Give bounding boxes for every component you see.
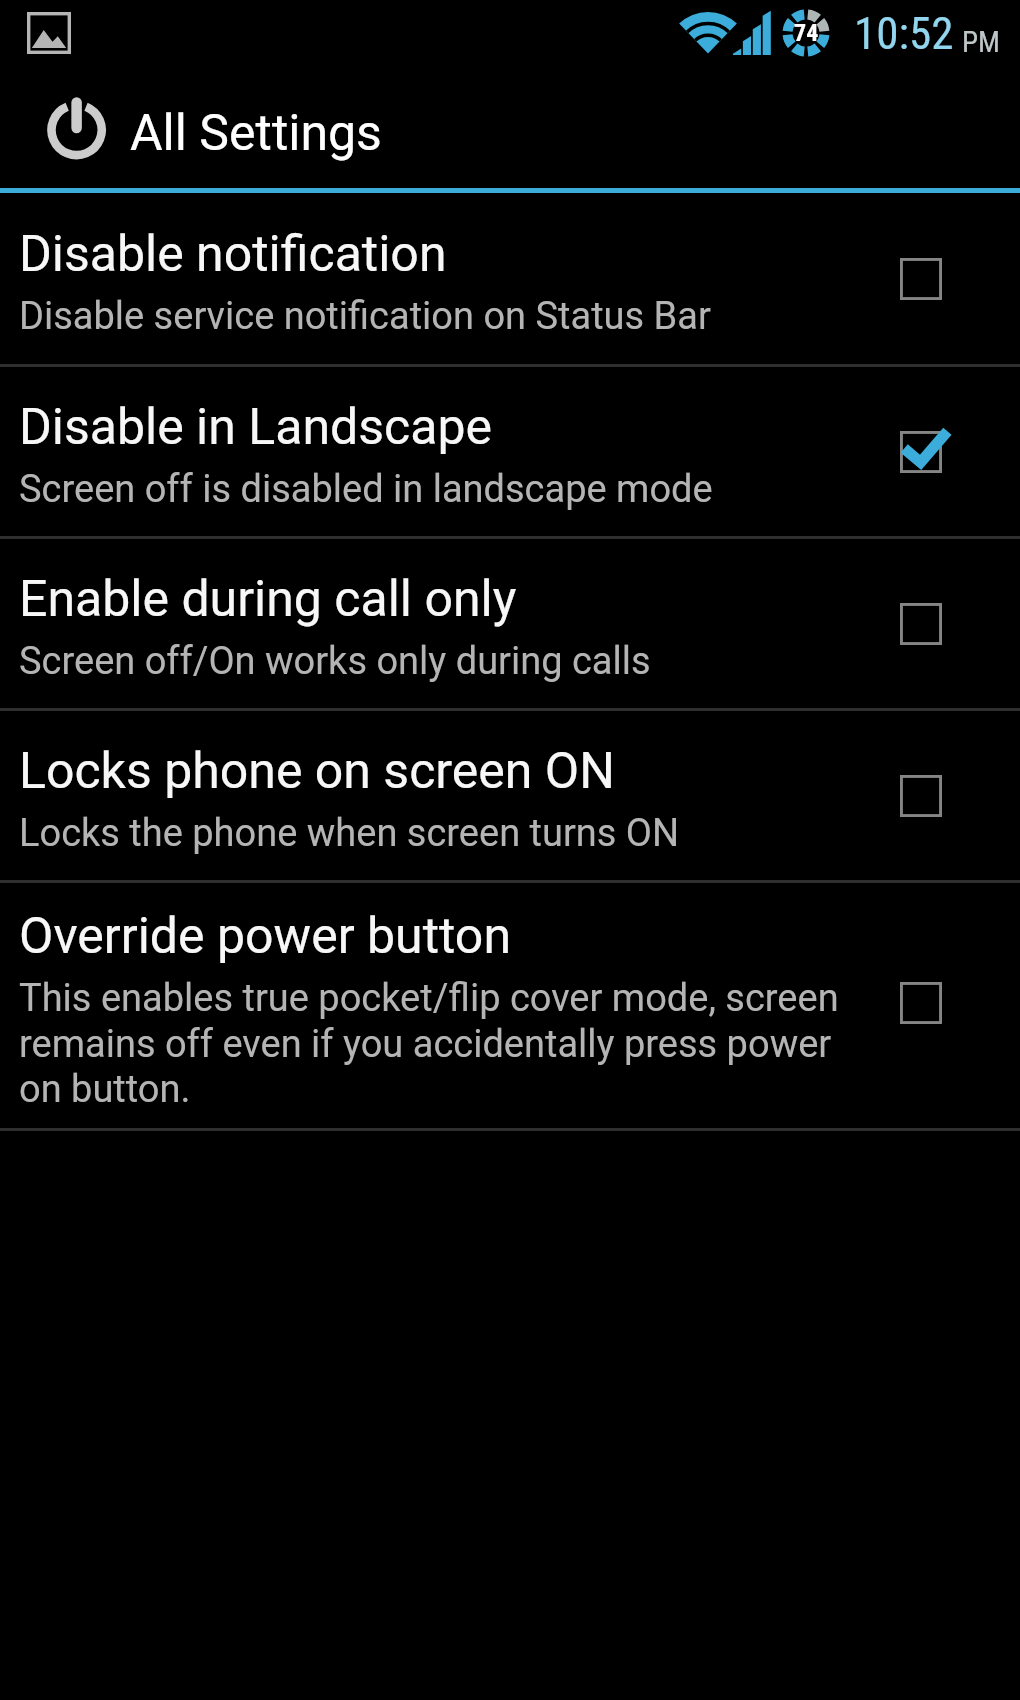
staticText: PM — [962, 25, 1000, 59]
staticText: Locks the phone when screen turns ON — [19, 811, 680, 856]
button[interactable]: Disable in Landscape — [0, 367, 1020, 536]
staticText: 10:52 — [854, 7, 954, 60]
button[interactable]: Locks phone on screen ON — [0, 711, 1020, 880]
staticText: Disable notification — [19, 225, 447, 284]
button[interactable]: Toggle setting — [872, 576, 968, 672]
staticText: All Settings — [130, 104, 382, 163]
staticText: Enable during call only — [19, 570, 517, 629]
button[interactable]: Toggle setting — [872, 404, 968, 500]
staticText: Locks phone on screen ON — [19, 742, 615, 801]
button[interactable]: Override power button — [0, 883, 1020, 1128]
button[interactable]: Toggle setting — [872, 955, 968, 1051]
staticText: 74 — [794, 19, 819, 47]
staticText: Screen off is disabled in landscape mode — [19, 467, 713, 512]
button[interactable]: Disable notification — [0, 193, 1020, 364]
other: Screenshot notification — [27, 12, 71, 54]
staticText: Disable in Landscape — [19, 398, 492, 457]
button[interactable]: Toggle setting — [872, 231, 968, 327]
button[interactable]: Toggle setting — [872, 748, 968, 844]
button[interactable]: Enable during call only — [0, 539, 1020, 708]
staticText: Disable service notification on Status B… — [19, 294, 711, 339]
staticText: This enables true pocket/flip cover mode… — [19, 976, 855, 1111]
staticText: Screen off/On works only during calls — [19, 639, 651, 684]
staticText: Override power button — [19, 907, 511, 966]
